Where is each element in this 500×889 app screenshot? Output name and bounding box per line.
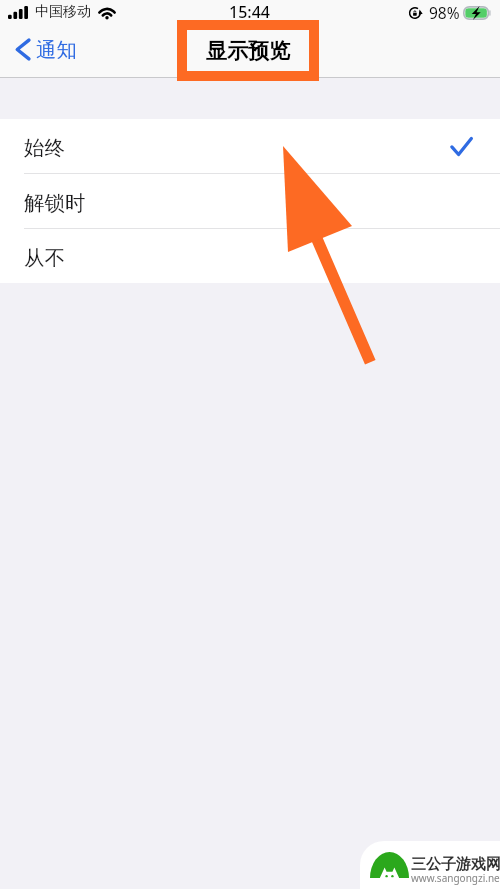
staticText: 从不	[24, 245, 65, 271]
button[interactable]: 从不	[0, 229, 500, 283]
staticText: 98%	[429, 2, 460, 23]
staticText: 通知	[36, 37, 77, 63]
staticText: 显示预览	[206, 38, 290, 64]
other: Rotation lock	[409, 7, 423, 19]
staticText: 始终	[24, 135, 65, 161]
button[interactable]: 通知	[0, 32, 87, 67]
staticText: 中国移动	[35, 3, 91, 21]
staticText: 解锁时	[24, 190, 86, 216]
button[interactable]: 解锁时	[0, 174, 500, 228]
staticText: www.sangongzi.net	[411, 871, 500, 885]
staticText: 15:44	[229, 1, 270, 23]
staticText: 三公子游戏网	[411, 855, 500, 874]
button[interactable]: 始终	[0, 119, 500, 173]
